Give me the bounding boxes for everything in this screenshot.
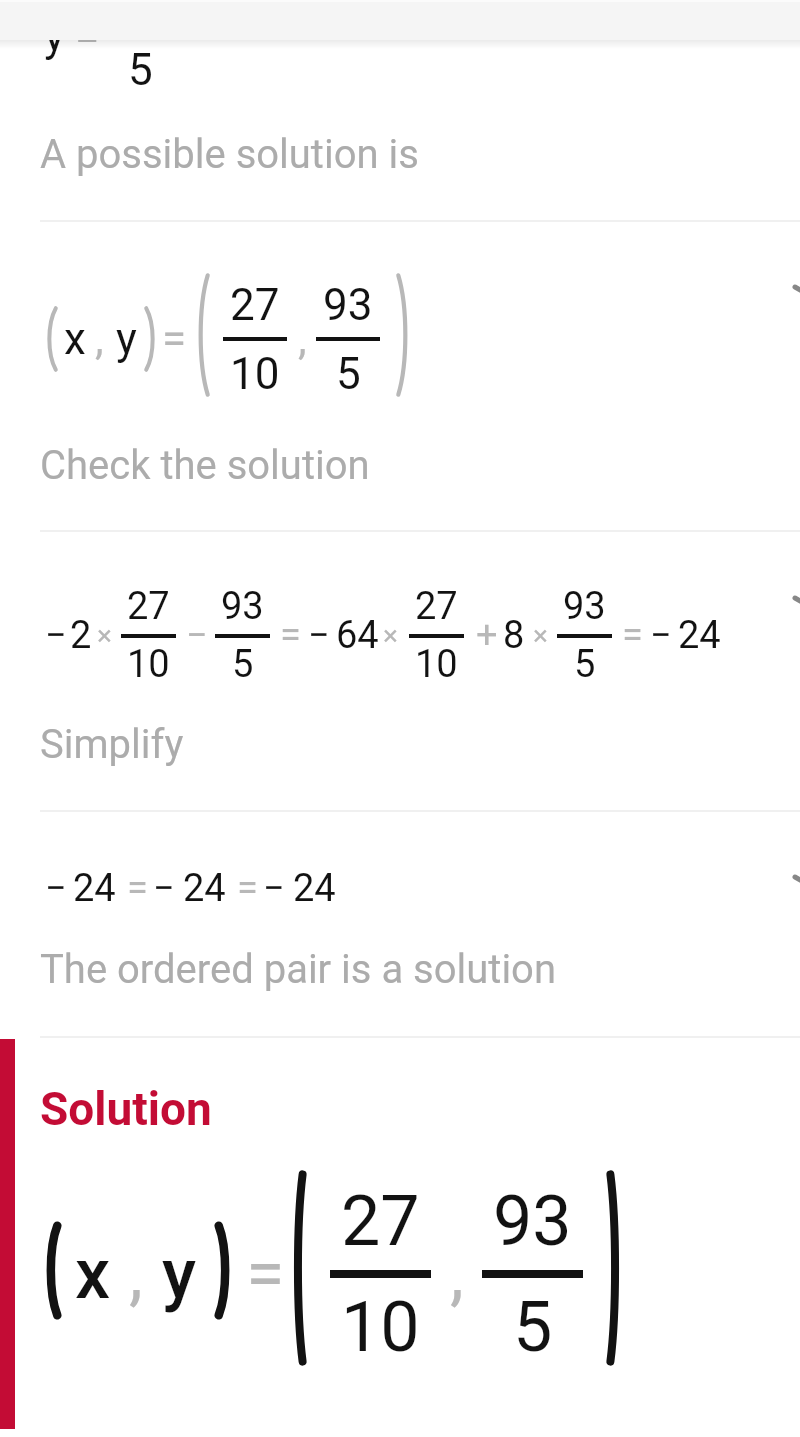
staticText: = [162,313,187,365]
staticText: , [129,1233,143,1315]
staticText: Solution [40,1082,212,1136]
staticText: − [308,613,330,658]
staticText: y [116,313,137,365]
staticText: − [45,613,67,658]
staticText: 93 [221,584,264,629]
staticText: × [97,619,112,652]
staticText: Check the solution [40,442,370,489]
staticText: 27 [415,584,458,629]
staticText: 10 [415,642,458,687]
staticText: = [75,10,100,62]
staticText: , [450,1233,464,1315]
staticText: 10 [341,1286,420,1368]
staticText: 5 [574,642,596,687]
staticText: 10 [127,642,170,687]
staticText: 24 [73,866,116,911]
staticText: = [246,1233,285,1315]
staticText: 93 [323,279,373,331]
staticText: − [650,613,672,658]
staticText: 5 [232,642,254,687]
button[interactable]: Show more steps [749,265,800,321]
staticText: = [237,866,258,911]
staticText: 64 [336,613,379,658]
staticText: × [383,619,398,652]
staticText: 2 [70,613,92,658]
staticText: , [95,313,104,365]
staticText: = [127,866,148,911]
button[interactable]: Show more steps [749,576,800,632]
staticText: 5 [336,348,361,400]
staticText: 93 [493,1180,572,1262]
staticText: 24 [293,866,336,911]
button[interactable]: Show more steps [749,855,800,911]
staticText: 8 [503,613,525,658]
staticText: A possible solution is [40,131,419,178]
staticText: 24 [183,866,226,911]
staticText: + [476,613,498,658]
staticText: 27 [127,584,170,629]
staticText: 10 [230,348,280,400]
staticText: = [622,613,643,658]
staticText: − [263,866,285,911]
staticText: 5 [513,1286,553,1368]
staticText: 27 [230,279,280,331]
staticText: , [298,313,307,365]
staticText: − [45,866,67,911]
staticText: Simplify [40,721,184,768]
staticText: 24 [678,613,721,658]
staticText: − [186,613,208,658]
staticText: y [162,1233,197,1315]
staticText: The ordered pair is a solution [40,946,557,993]
staticText: x [75,1233,111,1315]
staticText: x [64,313,86,365]
staticText: 27 [341,1180,420,1262]
staticText: = [280,613,301,658]
staticText: × [533,619,548,652]
staticText: y [44,10,65,62]
staticText: 93 [563,584,606,629]
staticText: − [153,866,175,911]
staticText: 5 [128,44,153,96]
